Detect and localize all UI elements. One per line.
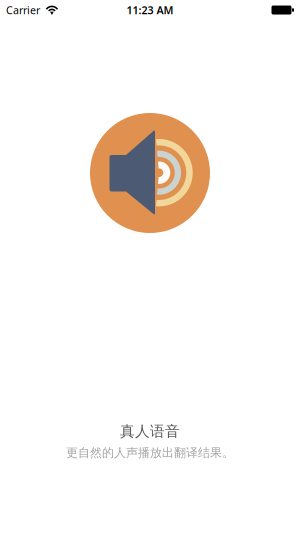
staticText: 更自然的人声播放出翻译结果。 [66, 445, 234, 460]
staticText: 11:23 AM [126, 3, 173, 17]
staticText: Carrier [6, 3, 40, 17]
staticText: 真人语音 [120, 422, 180, 440]
